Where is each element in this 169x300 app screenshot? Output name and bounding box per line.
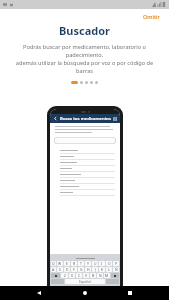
staticText: Y — [87, 261, 89, 266]
button[interactable]: X — [69, 273, 75, 278]
staticText: I — [101, 261, 103, 266]
staticText: Buscador — [0, 23, 169, 38]
button[interactable]: M — [104, 273, 110, 278]
staticText: O — [108, 261, 111, 266]
staticText: P — [115, 261, 118, 266]
staticText: W — [58, 261, 62, 266]
button[interactable]: J — [92, 267, 98, 272]
button[interactable]: G — [78, 267, 84, 272]
staticText: R — [73, 261, 76, 266]
staticText: K — [101, 267, 104, 272]
staticText: Español — [79, 280, 91, 284]
button[interactable]: B — [90, 273, 96, 278]
staticText: Ñ — [115, 267, 118, 272]
button[interactable] — [60, 178, 115, 183]
button[interactable]: Omitir — [140, 12, 163, 21]
button[interactable] — [60, 184, 115, 189]
button[interactable] — [60, 172, 115, 177]
staticText: H — [87, 267, 90, 272]
staticText: C — [78, 273, 81, 278]
button[interactable]: F — [71, 267, 77, 272]
button[interactable]: Page 5 — [95, 81, 98, 84]
button[interactable] — [60, 190, 115, 195]
staticText: F — [73, 267, 75, 272]
staticText: E — [66, 261, 68, 266]
staticText: Omitir — [143, 13, 160, 20]
staticText: T — [80, 261, 82, 266]
button[interactable]: U — [92, 261, 98, 266]
button[interactable]: Back — [53, 116, 58, 121]
staticText: L — [108, 267, 110, 272]
button[interactable]: Español — [65, 279, 105, 284]
button[interactable] — [60, 160, 115, 165]
button[interactable]: Scan barcode — [112, 116, 117, 121]
button[interactable]: W — [57, 261, 63, 266]
button[interactable]: Backspace — [111, 273, 119, 278]
button[interactable]: I — [99, 261, 105, 266]
staticText: Q — [52, 261, 55, 266]
button[interactable]: O — [106, 261, 112, 266]
button[interactable]: S — [57, 267, 63, 272]
button[interactable]: R — [71, 261, 77, 266]
button[interactable]: Page 2 — [80, 81, 83, 84]
staticText: Busca tus medicamentos — [60, 116, 111, 122]
button[interactable]: P — [113, 261, 119, 266]
staticText: A — [52, 267, 55, 272]
button[interactable] — [60, 148, 115, 153]
button[interactable]: E — [64, 261, 70, 266]
button[interactable]: Z — [61, 273, 68, 278]
button[interactable]: L — [106, 267, 112, 272]
button[interactable]: Recents — [123, 286, 137, 300]
button[interactable] — [60, 166, 115, 171]
button[interactable]: C — [76, 273, 82, 278]
button[interactable]: A — [51, 267, 56, 272]
button[interactable]: Search field — [54, 137, 116, 144]
staticText: Podrás buscar por medicamento, laborator… — [8, 43, 161, 75]
button[interactable]: D — [64, 267, 70, 272]
button[interactable]: Q — [51, 261, 56, 266]
button[interactable]: Home — [78, 286, 92, 300]
button[interactable]: Ñ — [113, 267, 119, 272]
button[interactable]: Y — [85, 261, 91, 266]
button[interactable]: Page 3 — [85, 81, 88, 84]
staticText: B — [92, 273, 95, 278]
staticText: G — [80, 267, 83, 272]
button[interactable]: Shift — [51, 273, 60, 278]
button[interactable]: V — [83, 273, 89, 278]
button[interactable]: Back — [32, 286, 46, 300]
staticText: X — [71, 273, 73, 278]
button[interactable] — [60, 154, 115, 159]
staticText: Z — [64, 273, 66, 278]
staticText: N — [99, 273, 102, 278]
button[interactable]: Page 4 — [90, 81, 93, 84]
staticText: J — [95, 267, 96, 272]
staticText: V — [85, 273, 88, 278]
button[interactable]: K — [99, 267, 105, 272]
button[interactable]: T — [78, 261, 84, 266]
staticText: S — [59, 267, 61, 272]
staticText: D — [66, 267, 69, 272]
button[interactable]: H — [85, 267, 91, 272]
button[interactable]: N — [97, 273, 103, 278]
staticText: U — [94, 261, 97, 266]
staticText: M — [105, 273, 109, 278]
button[interactable]: Page 1 — [71, 81, 78, 84]
